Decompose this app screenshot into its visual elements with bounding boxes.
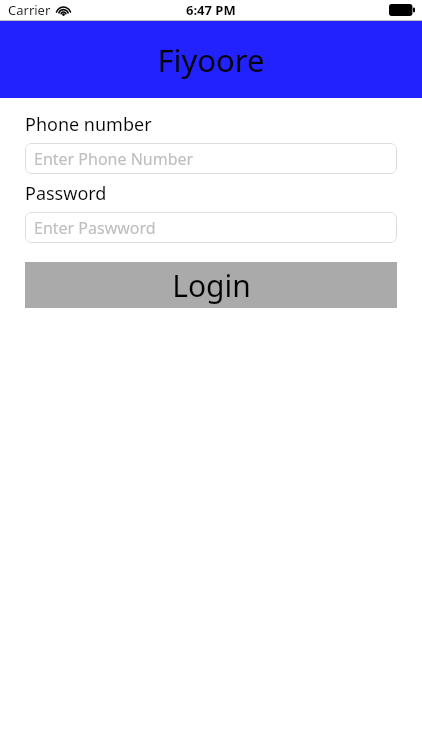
staticText: 6:47 PM (186, 1, 236, 19)
staticText: Enter Phone Number (34, 148, 194, 170)
other: Battery full (389, 4, 415, 16)
other: Wi-Fi signal (56, 4, 71, 16)
button[interactable]: Login (25, 262, 397, 308)
staticText: Phone number (25, 112, 152, 137)
button[interactable]: Password input (25, 212, 397, 243)
staticText: Fiyoore (157, 39, 265, 81)
button[interactable]: Phone number input (25, 143, 397, 174)
staticText: Carrier (8, 1, 51, 19)
staticText: Enter Paswword (34, 217, 156, 239)
staticText: Login (172, 265, 251, 306)
staticText: Password (25, 181, 107, 206)
